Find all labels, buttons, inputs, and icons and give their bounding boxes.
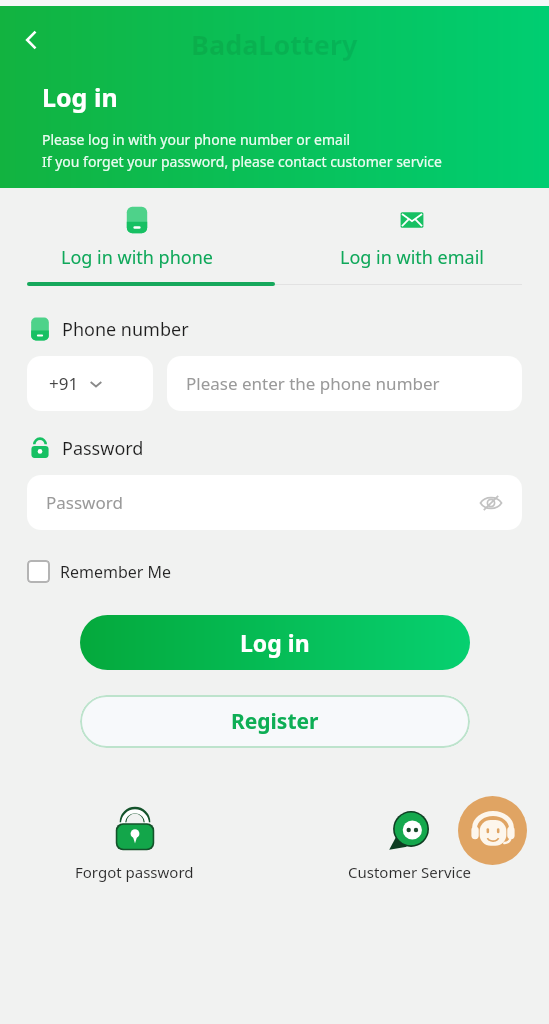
staticText: Register	[231, 707, 319, 736]
staticText: Remember Me	[60, 561, 172, 583]
staticText: Phone number	[62, 317, 189, 342]
button[interactable]: Password	[27, 475, 522, 530]
staticText: Log in with phone	[61, 245, 213, 270]
staticText: BadaLottery	[191, 26, 358, 63]
button[interactable]: Show password	[476, 488, 506, 518]
staticText: Please enter the phone number	[186, 372, 440, 395]
staticText: Password	[46, 491, 123, 514]
staticText: Please log in with your phone number or …	[42, 130, 351, 149]
button[interactable]: Log in with phone	[0, 192, 274, 282]
button[interactable]: Log in with email	[274, 192, 549, 282]
button[interactable]: Register	[80, 695, 470, 748]
staticText: Log in with email	[340, 245, 484, 270]
button[interactable]: Remember Me	[27, 560, 172, 583]
button[interactable]: Customer Service	[348, 804, 472, 882]
staticText: Customer Service	[348, 862, 472, 882]
button[interactable]: Log in	[80, 615, 470, 670]
staticText: Forgot password	[75, 862, 194, 882]
button[interactable]: Back	[12, 20, 52, 60]
button[interactable]: Forgot password	[75, 804, 194, 882]
staticText: +91	[49, 372, 79, 395]
button[interactable]: Support chat	[458, 796, 527, 865]
staticText: Log in	[42, 80, 118, 114]
button[interactable]: +91	[27, 356, 153, 411]
staticText: Log in	[240, 627, 310, 658]
button[interactable]: Please enter the phone number	[167, 356, 522, 411]
staticText: If you forget your password, please cont…	[42, 152, 442, 171]
staticText: Password	[62, 436, 144, 461]
